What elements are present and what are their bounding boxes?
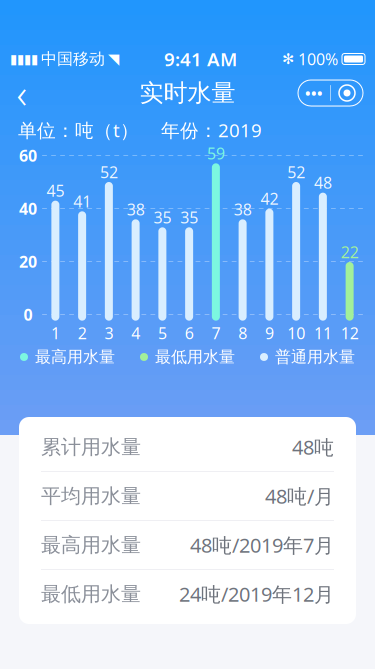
staticText: 9:41 AM bbox=[164, 47, 237, 71]
staticText: 实时水量 bbox=[139, 78, 235, 108]
staticText: 24吨/2019年12月 bbox=[179, 581, 334, 607]
staticText: 累计用水量 bbox=[41, 435, 141, 459]
staticText: 2 bbox=[78, 322, 87, 344]
staticText: 38 bbox=[127, 199, 145, 220]
staticText: 48 bbox=[314, 172, 332, 193]
staticText: 59 bbox=[207, 143, 225, 164]
staticText: 38 bbox=[234, 199, 252, 220]
staticText: 最高用水量 bbox=[35, 347, 115, 367]
staticText: 52 bbox=[100, 161, 118, 183]
staticText: 45 bbox=[46, 180, 64, 201]
staticText: 11 bbox=[314, 322, 332, 344]
staticText: 6 bbox=[185, 322, 194, 344]
staticText: 0 bbox=[23, 304, 32, 325]
button[interactable]: Target bbox=[331, 80, 363, 106]
staticText: 40 bbox=[19, 198, 37, 219]
staticText: ✻ bbox=[282, 51, 294, 67]
staticText: 52 bbox=[287, 161, 305, 183]
staticText: 普通用水量 bbox=[275, 347, 355, 367]
staticText: 7 bbox=[211, 322, 220, 344]
staticText: 8 bbox=[238, 322, 247, 344]
staticText: 最高用水量 bbox=[41, 533, 141, 557]
staticText: 10 bbox=[287, 322, 305, 344]
staticText: 60 bbox=[19, 145, 37, 166]
staticText: 最低用水量 bbox=[41, 582, 141, 606]
staticText: ▮▮▮▮ bbox=[10, 51, 38, 66]
staticText: 100% bbox=[298, 48, 338, 70]
button[interactable]: More bbox=[298, 80, 330, 106]
staticText: 35 bbox=[180, 207, 198, 228]
staticText: 3 bbox=[104, 322, 113, 344]
staticText: 单位：吨（t） bbox=[18, 118, 139, 142]
staticText: 48吨/2019年7月 bbox=[190, 532, 334, 558]
staticText: 1 bbox=[51, 322, 60, 344]
staticText: 48吨 bbox=[292, 434, 334, 460]
staticText: 平均用水量 bbox=[41, 484, 141, 508]
staticText: 年份：2019 bbox=[161, 118, 262, 142]
staticText: ◥ bbox=[108, 51, 119, 67]
staticText: 中国移动 bbox=[41, 49, 105, 69]
staticText: 4 bbox=[131, 322, 140, 344]
staticText: 22 bbox=[341, 241, 359, 263]
staticText: 9 bbox=[265, 322, 274, 344]
button[interactable]: Back bbox=[0, 73, 44, 113]
staticText: ••• bbox=[305, 83, 323, 103]
staticText: 42 bbox=[260, 188, 278, 209]
staticText: 41 bbox=[73, 191, 91, 212]
staticText: 48吨/月 bbox=[265, 483, 334, 509]
staticText: 12 bbox=[341, 322, 359, 344]
staticText: 35 bbox=[153, 207, 171, 228]
staticText: ‹ bbox=[16, 66, 27, 119]
staticText: 20 bbox=[19, 251, 37, 272]
staticText: 5 bbox=[158, 322, 167, 344]
staticText: 最低用水量 bbox=[155, 347, 235, 367]
